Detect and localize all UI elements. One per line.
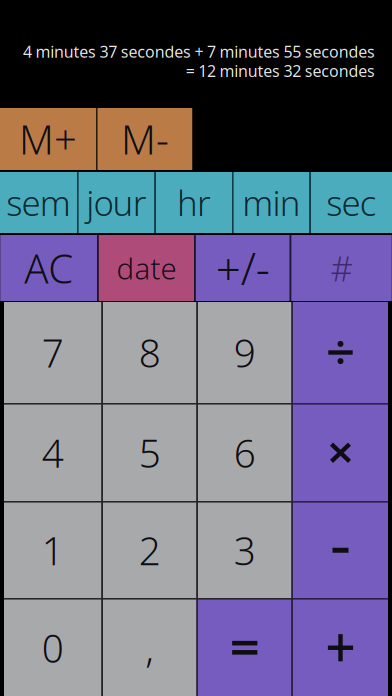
staticText: date (116, 248, 176, 287)
staticText: 9 (234, 327, 256, 378)
button[interactable]: Subtract (293, 502, 388, 598)
staticText: , (145, 622, 154, 673)
button[interactable]: min (233, 172, 309, 233)
button[interactable]: AC (0, 235, 97, 301)
button[interactable]: 2 (103, 502, 196, 598)
button[interactable]: Divide (293, 302, 388, 403)
staticText: = 12 minutes 32 secondes (186, 60, 375, 81)
button[interactable]: # (291, 235, 392, 301)
button[interactable]: sec (311, 172, 392, 233)
button[interactable]: 9 (198, 302, 291, 403)
staticText: 4 minutes 37 secondes + 7 minutes 55 sec… (23, 41, 375, 62)
staticText: M- (121, 112, 169, 165)
button[interactable]: 5 (103, 404, 196, 501)
staticText: hr (177, 179, 211, 225)
staticText: 4 (42, 427, 64, 478)
button[interactable]: , (103, 599, 196, 696)
button[interactable]: M- (97, 108, 192, 170)
button[interactable]: 7 (4, 302, 101, 403)
staticText: 7 (42, 327, 64, 378)
button[interactable]: 8 (103, 302, 196, 403)
staticText: +/- (216, 239, 270, 297)
button[interactable]: M+ (0, 108, 96, 170)
button[interactable]: Equals (198, 599, 291, 696)
staticText: AC (24, 241, 73, 294)
button[interactable]: Add (293, 599, 388, 696)
button[interactable]: +/- (196, 235, 290, 301)
button[interactable]: 6 (198, 404, 291, 501)
staticText: jour (86, 179, 147, 225)
staticText: 8 (139, 327, 161, 378)
staticText: 3 (234, 525, 256, 576)
staticText: 1 (42, 525, 64, 576)
staticText: min (242, 179, 301, 225)
button[interactable]: 1 (4, 502, 101, 598)
button[interactable]: sem (0, 172, 77, 233)
button[interactable]: hr (156, 172, 232, 233)
button[interactable]: date (99, 235, 194, 301)
button[interactable]: Multiply (293, 404, 388, 501)
staticText: 6 (234, 427, 256, 478)
button[interactable]: jour (78, 172, 154, 233)
staticText: 2 (139, 525, 161, 576)
staticText: 0 (42, 622, 64, 673)
button[interactable]: 3 (198, 502, 291, 598)
staticText: 5 (139, 427, 161, 478)
button[interactable]: 4 (4, 404, 101, 501)
staticText: M+ (19, 112, 77, 165)
staticText: # (330, 245, 352, 291)
staticText: sem (6, 179, 71, 225)
button[interactable]: 0 (4, 599, 101, 696)
staticText: sec (326, 179, 377, 225)
